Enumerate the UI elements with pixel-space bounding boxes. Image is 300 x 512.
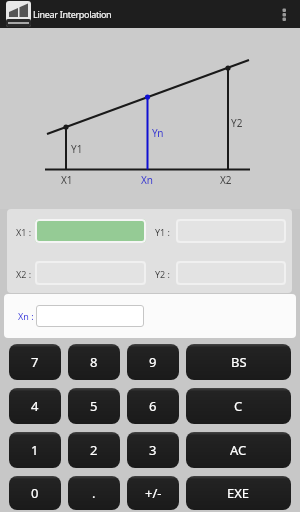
button[interactable]: [274, 0, 300, 28]
button[interactable]: 1: [9, 432, 61, 468]
button[interactable]: 9: [127, 344, 179, 380]
button[interactable]: [176, 261, 286, 285]
staticText: X1: [61, 173, 73, 187]
staticText: 8: [90, 353, 98, 371]
staticText: AC: [230, 441, 247, 459]
staticText: 7: [31, 353, 39, 371]
staticText: Y2: [231, 116, 243, 130]
staticText: 4: [31, 397, 39, 415]
staticText: X1 :: [16, 226, 32, 238]
staticText: 0: [31, 484, 39, 502]
staticText: 3: [149, 441, 157, 459]
button[interactable]: 7: [9, 344, 61, 380]
button[interactable]: 0: [9, 476, 61, 510]
button[interactable]: BS: [186, 344, 291, 380]
staticText: C: [234, 397, 243, 415]
button[interactable]: 5: [68, 388, 120, 424]
staticText: Y1: [71, 142, 83, 156]
staticText: X2 :: [16, 268, 32, 280]
button[interactable]: 6: [127, 388, 179, 424]
staticText: 6: [149, 397, 157, 415]
staticText: .: [92, 484, 96, 502]
button[interactable]: [6, 1, 31, 27]
button[interactable]: AC: [186, 432, 291, 468]
button[interactable]: 8: [68, 344, 120, 380]
button[interactable]: 3: [127, 432, 179, 468]
staticText: 2: [90, 441, 98, 459]
staticText: Yn: [152, 126, 164, 140]
staticText: Xn :: [18, 310, 34, 322]
button[interactable]: [35, 261, 146, 285]
staticText: 9: [149, 353, 157, 371]
button[interactable]: C: [186, 388, 291, 424]
button[interactable]: .: [68, 476, 120, 510]
button[interactable]: 2: [68, 432, 120, 468]
button[interactable]: [176, 219, 286, 243]
staticText: Y2 :: [155, 268, 170, 280]
staticText: X2: [220, 173, 232, 187]
button[interactable]: 4: [9, 388, 61, 424]
staticText: BS: [231, 353, 247, 371]
staticText: Y1 :: [155, 226, 170, 238]
staticText: 5: [90, 397, 98, 415]
button[interactable]: [36, 305, 144, 327]
staticText: EXE: [227, 484, 250, 502]
staticText: 1: [31, 441, 39, 459]
staticText: +/-: [145, 484, 162, 502]
staticText: Linear Interpolation: [33, 8, 112, 20]
button[interactable]: EXE: [186, 476, 291, 510]
staticText: Xn: [141, 173, 154, 187]
button[interactable]: [35, 219, 146, 243]
button[interactable]: +/-: [127, 476, 179, 510]
